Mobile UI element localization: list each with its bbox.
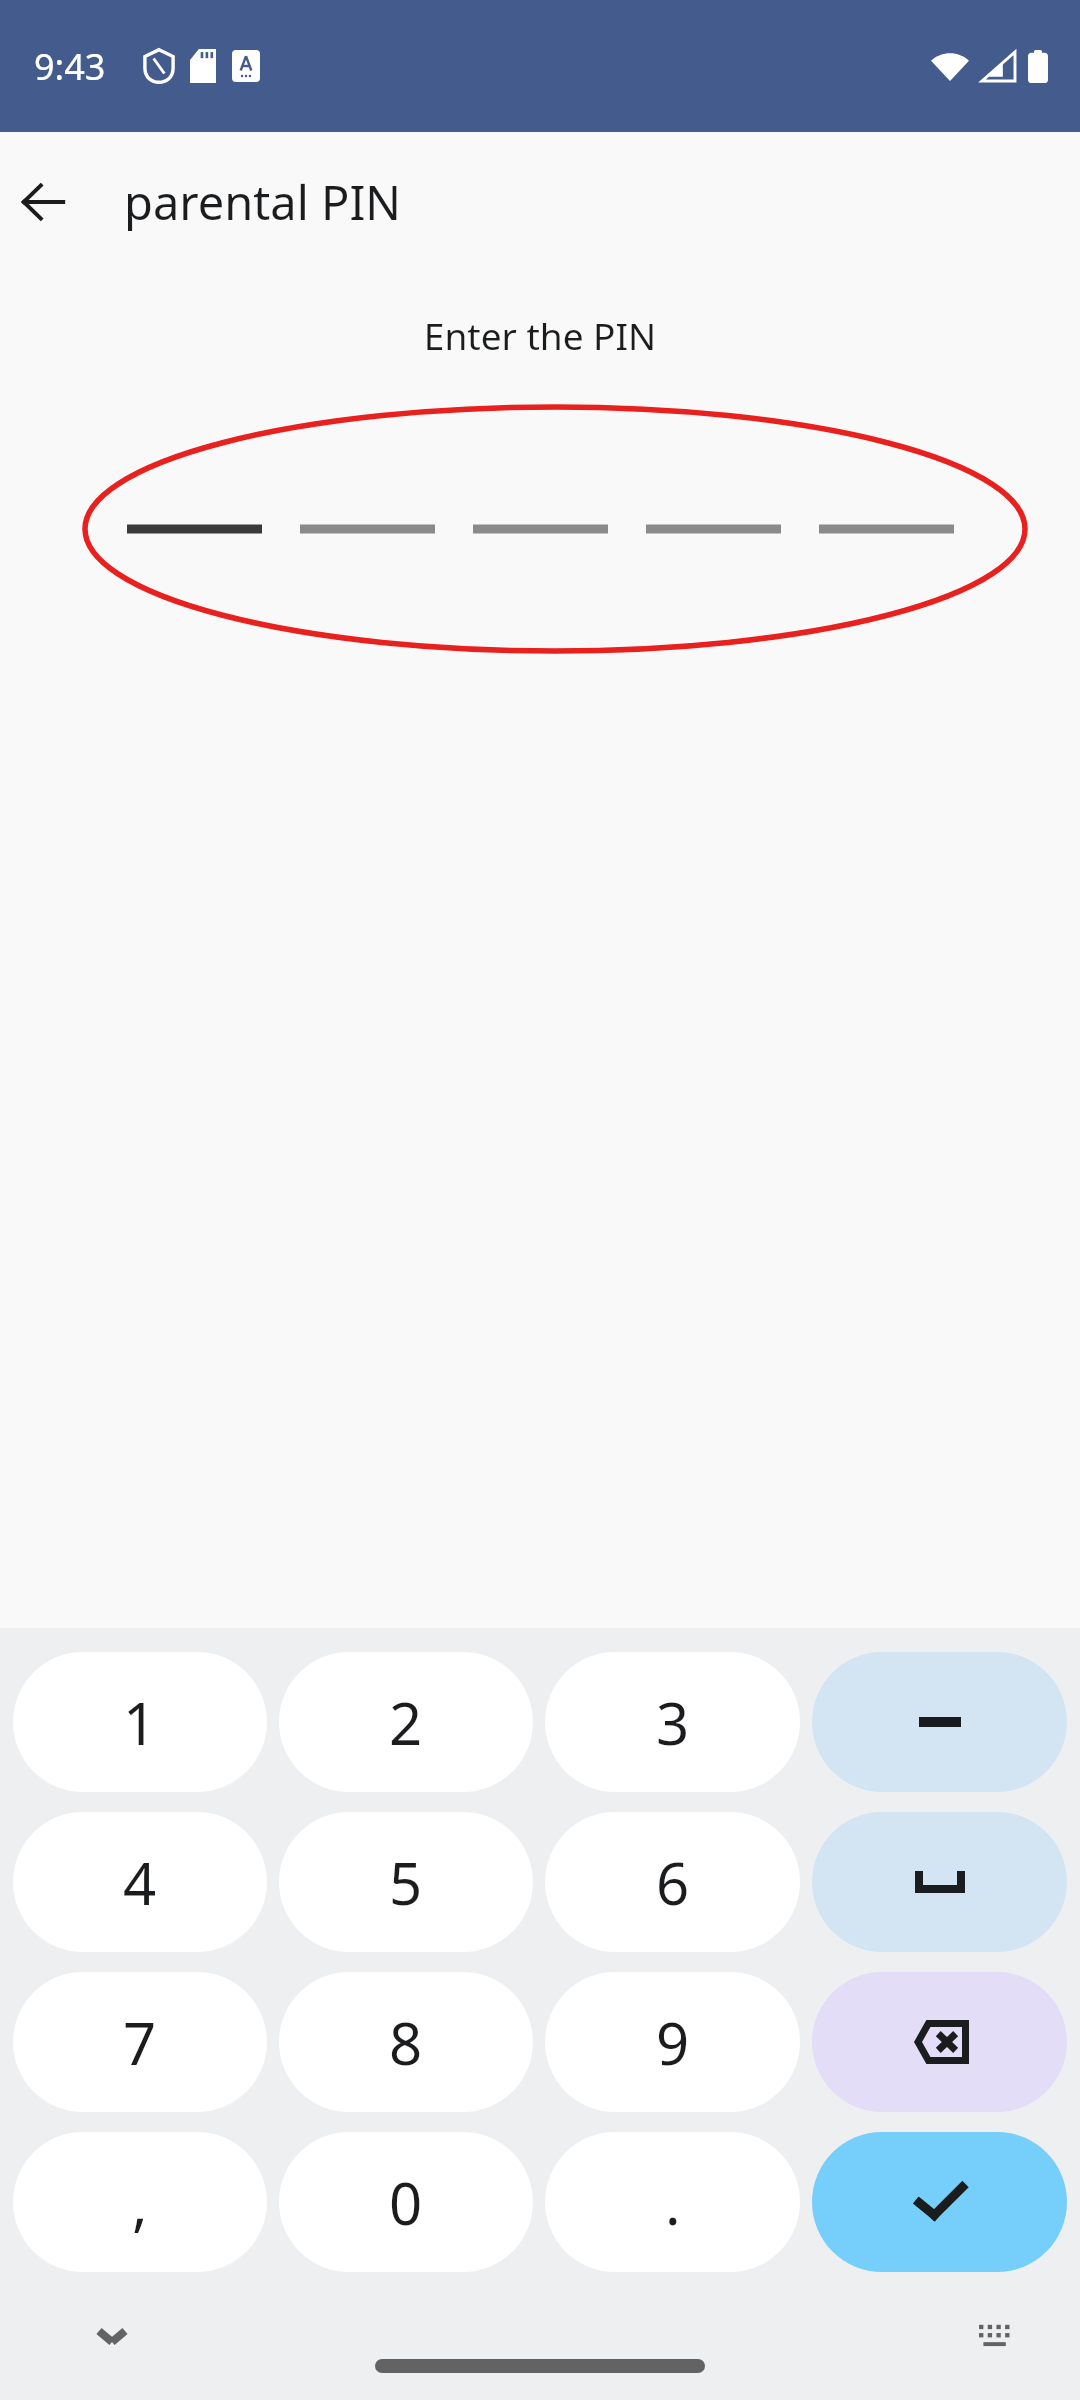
button[interactable]: 8 <box>279 1972 533 2112</box>
button[interactable]: 2 <box>279 1652 533 1792</box>
staticText: 2 <box>389 1683 423 1762</box>
staticText: 7 <box>123 2003 157 2082</box>
staticText: , <box>132 2163 148 2242</box>
button[interactable]: 9 <box>545 1972 800 2112</box>
staticText: 9 <box>656 2003 690 2082</box>
staticText: 8 <box>389 2003 423 2082</box>
button[interactable]: , <box>13 2132 267 2272</box>
staticText: . <box>665 2163 681 2242</box>
staticText: 3 <box>656 1683 690 1762</box>
button[interactable]: Done <box>812 2132 1067 2272</box>
button[interactable]: 3 <box>545 1652 800 1792</box>
button[interactable]: 4 <box>13 1812 267 1952</box>
staticText: 0 <box>389 2163 423 2242</box>
button[interactable]: Backspace <box>812 1972 1067 2112</box>
button[interactable]: 6 <box>545 1812 800 1952</box>
button[interactable]: . <box>545 2132 800 2272</box>
staticText: parental PIN <box>124 170 402 234</box>
button[interactable]: Switch keyboard <box>960 2300 1032 2372</box>
button[interactable]: Hyphen <box>812 1652 1067 1792</box>
staticText: 6 <box>656 1843 690 1922</box>
staticText: 4 <box>123 1843 157 1922</box>
button[interactable]: 7 <box>13 1972 267 2112</box>
button[interactable]: Hide keyboard <box>76 2300 148 2372</box>
staticText: Enter the PIN <box>0 310 1080 360</box>
button[interactable]: 5 <box>279 1812 533 1952</box>
staticText: 5 <box>389 1843 423 1922</box>
button[interactable]: 1 <box>13 1652 267 1792</box>
staticText: 9:43 <box>34 42 106 91</box>
staticText: 1 <box>123 1683 157 1762</box>
button[interactable]: 0 <box>279 2132 533 2272</box>
button[interactable]: Space <box>812 1812 1067 1952</box>
button[interactable]: Back <box>10 168 78 236</box>
